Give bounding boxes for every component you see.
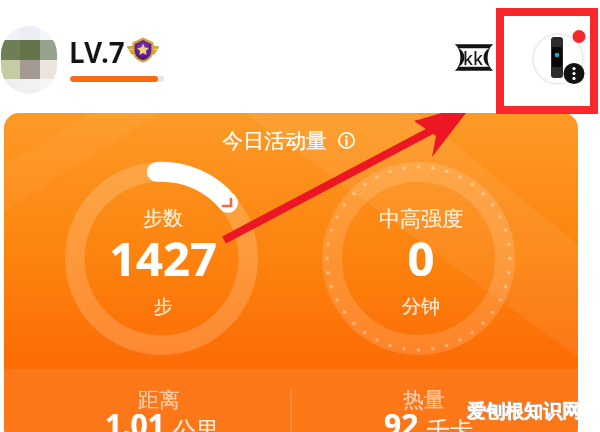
staticText: 千卡 [427,416,473,432]
staticText: 热量 [274,387,574,413]
staticText: LV.7 [69,33,125,71]
staticText: kk [463,47,483,70]
staticText: 今日活动量 [222,128,327,152]
staticText: 92 [384,404,419,432]
staticText: 爱刨根知识网 [467,400,581,424]
staticText: 分钟 [271,295,571,319]
button[interactable]: Moderate to vigorous minutes [322,162,515,355]
button[interactable]: My device [528,29,588,89]
staticText: 0 [271,226,571,290]
button[interactable]: Profile avatar [1,26,57,94]
staticText: 中高强度 [271,206,571,232]
button[interactable]: Coupons [454,43,494,72]
staticText: 1427 [13,226,313,290]
button[interactable]: Info [338,132,355,149]
staticText: 1.01 [105,404,165,432]
staticText: 公里 [173,416,219,432]
button[interactable]: Steps [65,162,258,355]
button[interactable]: Steps [4,113,578,432]
staticText: 爱刨根知识网 [466,399,580,423]
staticText: 步 [13,295,313,319]
staticText: 步数 [13,206,313,231]
staticText: 距离 [9,387,309,413]
